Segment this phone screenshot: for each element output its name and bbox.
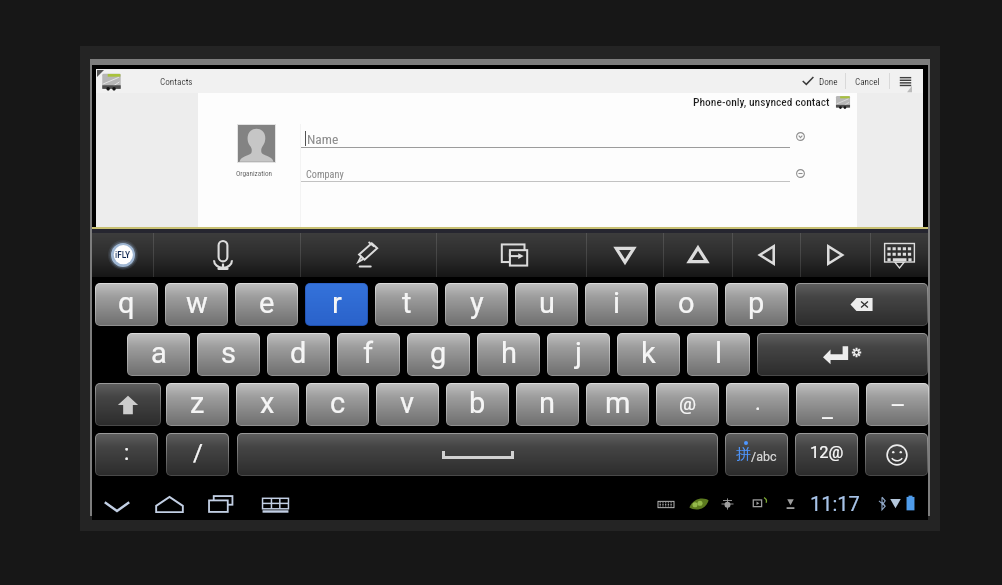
- button[interactable]: Move down: [586, 233, 663, 277]
- staticText: :: [124, 440, 130, 466]
- button[interactable]: Add photo: [238, 125, 275, 162]
- button[interactable]: Remove company: [796, 169, 805, 178]
- staticText: x: [260, 386, 275, 420]
- staticText: iFLY: [115, 250, 131, 260]
- button[interactable]: Contacts app, navigate up: [101, 71, 122, 92]
- staticText: i: [613, 286, 621, 320]
- button[interactable]: h: [478, 334, 539, 375]
- button[interactable]: g: [408, 334, 469, 375]
- staticText: n: [539, 386, 556, 420]
- button[interactable]: e: [236, 284, 297, 325]
- button[interactable]: k: [618, 334, 679, 375]
- button[interactable]: .: [727, 384, 788, 425]
- staticText: a: [151, 336, 167, 370]
- button[interactable]: a: [128, 334, 189, 375]
- staticText: z: [190, 386, 205, 420]
- button[interactable]: bksp: [796, 284, 927, 325]
- staticText: d: [290, 336, 307, 370]
- staticText: h: [501, 336, 517, 370]
- button[interactable]: Done: [795, 69, 845, 93]
- button[interactable]: c: [307, 384, 368, 425]
- button[interactable]: pinyin: [726, 434, 787, 475]
- button[interactable]: y: [446, 284, 507, 325]
- staticText: 拼: [736, 445, 751, 464]
- button[interactable]: –: [867, 384, 928, 425]
- button[interactable]: space: [238, 434, 717, 475]
- button[interactable]: d: [268, 334, 329, 375]
- button[interactable]: Expand name fields: [796, 132, 805, 141]
- staticText: Name: [307, 131, 339, 147]
- button[interactable]: Move left: [732, 233, 801, 277]
- button[interactable]: smile: [866, 434, 927, 475]
- staticText: l: [715, 336, 723, 370]
- staticText: Cancel: [855, 76, 880, 87]
- button[interactable]: Choose input method: [249, 488, 301, 520]
- button[interactable]: iFlytek input: [92, 233, 153, 277]
- button[interactable]: u: [516, 284, 577, 325]
- staticText: f: [363, 336, 374, 370]
- button[interactable]: l: [688, 334, 749, 375]
- button[interactable]: m: [587, 384, 648, 425]
- button[interactable]: :: [96, 434, 157, 475]
- button[interactable]: i: [586, 284, 647, 325]
- button[interactable]: p: [726, 284, 787, 325]
- button[interactable]: Move up: [663, 233, 732, 277]
- staticText: p: [748, 286, 765, 320]
- button[interactable]: q: [96, 284, 157, 325]
- button[interactable]: enter: [758, 334, 927, 375]
- staticText: Done: [819, 76, 838, 87]
- staticText: Contacts: [160, 76, 193, 87]
- button[interactable]: Hide keyboard: [91, 488, 143, 520]
- staticText: b: [469, 386, 486, 420]
- button[interactable]: Home: [143, 488, 195, 520]
- staticText: 12@: [810, 443, 844, 462]
- staticText: g: [430, 336, 447, 370]
- button[interactable]: @: [657, 384, 718, 425]
- button[interactable]: x: [237, 384, 298, 425]
- button[interactable]: Voice input: [153, 233, 300, 277]
- staticText: o: [678, 286, 695, 320]
- staticText: Phone-only, unsynced contact: [693, 95, 830, 108]
- button[interactable]: Cancel: [846, 69, 889, 93]
- button[interactable]: s: [198, 334, 259, 375]
- button[interactable]: o: [656, 284, 717, 325]
- button[interactable]: _: [797, 384, 858, 425]
- staticText: r: [332, 286, 342, 320]
- button[interactable]: Switch input mode: [436, 233, 586, 277]
- button[interactable]: More options: [890, 69, 921, 93]
- staticText: Company: [306, 169, 344, 181]
- button[interactable]: v: [377, 384, 438, 425]
- button[interactable]: r: [306, 284, 367, 325]
- button[interactable]: z: [167, 384, 228, 425]
- staticText: w: [186, 286, 208, 320]
- button[interactable]: t: [376, 284, 437, 325]
- staticText: u: [539, 286, 555, 320]
- button[interactable]: Keyboard layout: [870, 233, 928, 277]
- staticText: /: [193, 439, 203, 467]
- staticText: v: [400, 386, 415, 420]
- staticText: t: [402, 286, 412, 320]
- staticText: y: [470, 286, 484, 320]
- staticText: c: [330, 386, 346, 420]
- staticText: m: [605, 386, 631, 420]
- button[interactable]: b: [447, 384, 508, 425]
- button[interactable]: 12@: [796, 434, 857, 475]
- button[interactable]: w: [166, 284, 227, 325]
- button[interactable]: Recent apps: [195, 488, 247, 520]
- staticText: .: [755, 390, 761, 416]
- button[interactable]: j: [548, 334, 609, 375]
- button[interactable]: shift: [96, 384, 160, 425]
- staticText: k: [641, 336, 656, 370]
- button[interactable]: f: [338, 334, 399, 375]
- button[interactable]: Handwriting: [300, 233, 436, 277]
- staticText: q: [118, 286, 135, 320]
- staticText: _: [822, 395, 833, 423]
- button[interactable]: n: [517, 384, 578, 425]
- staticText: –: [890, 392, 906, 420]
- staticText: 11:17: [810, 492, 860, 515]
- staticText: @: [679, 392, 697, 414]
- button[interactable]: /: [167, 434, 228, 475]
- button[interactable]: Move right: [800, 233, 870, 277]
- staticText: Organization: [236, 169, 273, 177]
- staticText: s: [221, 336, 236, 370]
